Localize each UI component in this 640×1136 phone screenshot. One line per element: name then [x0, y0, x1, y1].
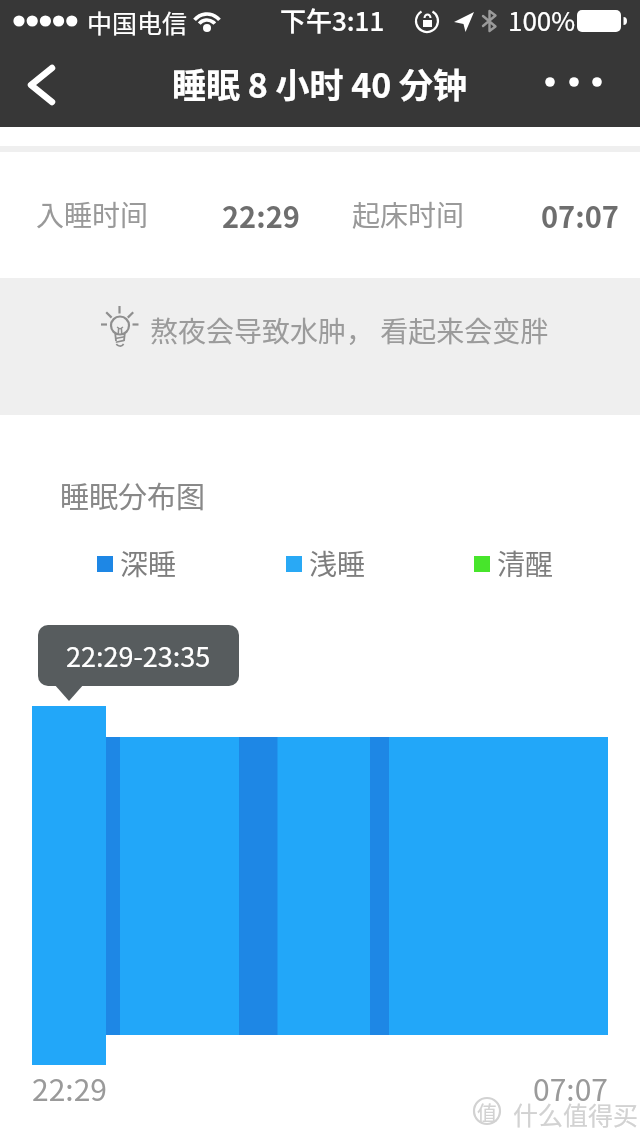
staticText: 起床时间: [352, 194, 465, 235]
staticText: 22:29: [32, 1066, 107, 1109]
staticText: 入睡时间: [36, 194, 149, 235]
staticText: 深睡: [120, 543, 177, 584]
staticText: 清醒: [497, 543, 554, 584]
button[interactable]: [10, 55, 74, 115]
button[interactable]: 入睡时间: [0, 152, 640, 278]
staticText: 22:29: [222, 194, 300, 236]
staticText: 熬夜会导致水肿， 看起来会变胖: [150, 310, 549, 351]
staticText: 值: [477, 1098, 497, 1127]
staticText: 22:29-23:35: [66, 636, 211, 675]
staticText: 什么值得买: [513, 1096, 639, 1132]
staticText: 100%: [508, 1, 576, 39]
staticText: 睡眠 8 小时 40 分钟: [172, 59, 468, 108]
staticText: 浅睡: [309, 543, 366, 584]
staticText: 07:07: [541, 194, 619, 236]
staticText: 07:07: [533, 1066, 608, 1109]
button[interactable]: [528, 55, 618, 110]
button[interactable]: [0, 700, 640, 1070]
staticText: 中国电信: [87, 4, 188, 40]
staticText: 睡眠分布图: [60, 474, 206, 516]
staticText: 下午3:11: [280, 1, 385, 39]
